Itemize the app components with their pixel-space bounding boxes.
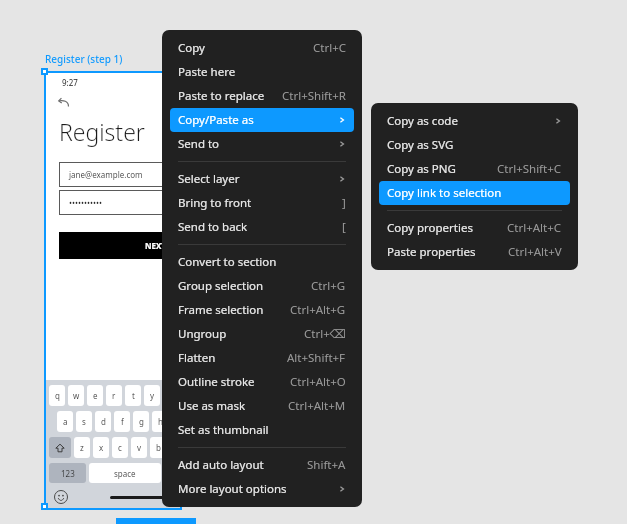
button[interactable]: Select layer [170,167,354,191]
staticText: f [121,416,124,427]
button[interactable]: Outline stroke [170,370,354,394]
staticText: s [82,416,86,427]
button[interactable]: d [95,411,111,432]
button[interactable]: 123 [49,463,86,483]
button[interactable]: a [57,411,73,432]
button[interactable]: NEXT [59,232,180,259]
staticText: 123 [61,468,75,479]
button[interactable]: e [87,385,103,406]
button[interactable]: Paste here [170,60,354,84]
button[interactable]: Convert to section [170,250,354,274]
staticText: Ctrl+Alt+M [288,398,346,414]
button[interactable]: w [68,385,84,406]
button[interactable]: t [125,385,141,406]
button[interactable]: g [133,411,149,432]
button[interactable]: Copy/Paste as [170,108,354,132]
staticText: Frame selection [178,302,264,318]
staticText: w [73,390,80,401]
staticText: Send to [178,136,220,152]
staticText: NEXT [145,240,166,251]
button[interactable]: Paste to replace [170,84,354,108]
button[interactable]: y [144,385,160,406]
staticText: Register [59,116,145,147]
button[interactable]: Add auto layout [170,453,354,477]
button[interactable]: ••••••••••• [59,190,180,215]
staticText: Flatten [178,350,216,366]
staticText: d [101,416,106,427]
staticText: Ctrl+Alt+V [508,244,562,260]
staticText: Ctrl+⌫ [304,326,346,342]
button[interactable]: Copy properties [379,216,570,240]
button[interactable]: Copy as code [379,109,570,133]
staticText: Paste here [178,64,236,80]
staticText: r [112,390,116,401]
button[interactable]: f [114,411,130,432]
button[interactable]: Back [56,95,72,111]
button[interactable]: Bring to front [170,191,354,215]
button[interactable]: Send to back [170,215,354,239]
button[interactable]: jane@example.com [59,162,180,187]
button[interactable]: Send to [170,132,354,156]
button[interactable]: Copy as SVG [379,133,570,157]
button[interactable]: Copy [170,36,354,60]
staticText: Convert to section [178,254,277,270]
staticText: t [132,390,135,401]
staticText: Ctrl+C [313,40,346,56]
staticText: h [158,416,163,427]
staticText: Copy properties [387,220,473,236]
button[interactable]: More layout options [170,477,354,501]
staticText: q [55,390,60,401]
staticText: jane@example.com [69,169,143,180]
staticText: Paste properties [387,244,476,260]
staticText: b [156,442,161,453]
button[interactable]: v [131,437,147,458]
staticText: Ungroup [178,326,227,342]
button[interactable]: h [152,411,168,432]
button[interactable]: Group selection [170,274,354,298]
button[interactable]: s [76,411,92,432]
staticText: Ctrl+Alt+C [507,220,562,236]
staticText: 9:27 [62,77,78,88]
staticText: Paste to replace [178,88,265,104]
staticText: v [137,442,142,453]
button[interactable]: Paste properties [379,240,570,264]
staticText: space [114,468,136,479]
staticText: Shift+A [307,457,346,473]
button[interactable]: c [112,437,128,458]
button[interactable]: Flatten [170,346,354,370]
staticText: Group selection [178,278,264,294]
staticText: a [63,416,68,427]
button[interactable]: Register (step 1) [45,52,123,66]
staticText: e [93,390,98,401]
staticText: Select layer [178,171,240,187]
staticText: Add auto layout [178,457,264,473]
staticText: Copy as PNG [387,161,456,177]
button[interactable]: Shift [49,437,71,458]
button[interactable]: q [49,385,65,406]
button[interactable]: Ungroup [170,322,354,346]
staticText: More layout options [178,481,287,497]
button[interactable]: b [150,437,166,458]
staticText: Copy/Paste as [178,112,254,128]
button[interactable]: r [106,385,122,406]
staticText: ••••••••••• [69,197,103,208]
button[interactable]: Emoji [54,490,68,504]
button[interactable]: Frame selection [170,298,354,322]
staticText: g [139,416,144,427]
button[interactable]: Use as mask [170,394,354,418]
staticText: Ctrl+Shift+C [497,161,562,177]
button[interactable]: Copy as PNG [379,157,570,181]
staticText: z [80,442,84,453]
button[interactable]: z [74,437,90,458]
button[interactable]: Set as thumbnail [170,418,354,442]
button[interactable]: x [93,437,109,458]
staticText: Bring to front [178,195,252,211]
button[interactable]: space [89,463,161,483]
button[interactable]: Copy link to selection [379,181,570,205]
